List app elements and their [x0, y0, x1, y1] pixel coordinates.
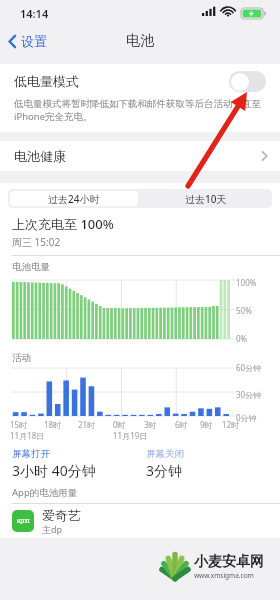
- staticText: 14:14: [20, 6, 49, 21]
- button[interactable]: 低电量模式开关: [229, 71, 266, 92]
- staticText: 设置: [21, 33, 47, 49]
- button[interactable]: iQIYI: [0, 504, 280, 538]
- staticText: iQIYI: [17, 518, 30, 525]
- staticText: 过去10天: [185, 192, 227, 206]
- staticText: 电池: [126, 32, 154, 50]
- staticText: 15时: [10, 419, 28, 430]
- staticText: 爱奇艺: [42, 507, 81, 523]
- button[interactable]: 过去24小时: [10, 191, 138, 206]
- staticText: 3分钟: [146, 461, 183, 480]
- staticText: 0%: [236, 333, 248, 344]
- button[interactable]: 电池健康: [0, 141, 280, 171]
- staticText: 周三 15:02: [12, 235, 61, 249]
- staticText: 21时: [78, 419, 96, 430]
- staticText: 0时: [113, 419, 126, 430]
- staticText: 50%: [236, 305, 252, 316]
- staticText: 30分钟: [236, 389, 262, 400]
- button[interactable]: 过去10天: [140, 189, 272, 208]
- staticText: 3小时 40分钟: [12, 461, 96, 480]
- staticText: 11月18日: [10, 430, 45, 441]
- staticText: 低电量模式将暂时降低如下载和邮件获取等后台活动，直至 iPhone完全充电。: [14, 98, 261, 123]
- button[interactable]: 设置: [0, 29, 55, 53]
- staticText: 屏幕关闭: [146, 448, 184, 460]
- staticText: 屏幕打开: [12, 448, 50, 460]
- staticText: 电池健康: [14, 148, 66, 164]
- staticText: 11月19日: [113, 430, 148, 441]
- staticText: 9时: [200, 419, 213, 430]
- staticText: 6时: [175, 419, 188, 430]
- staticText: 0分钟: [236, 412, 257, 423]
- staticText: 电池电量: [12, 261, 50, 273]
- staticText: www.xmsigma.com: [194, 571, 254, 580]
- staticText: 60分钟: [236, 362, 262, 373]
- staticText: 活动: [12, 352, 31, 364]
- staticText: 过去24小时: [48, 192, 100, 206]
- staticText: 3时: [144, 419, 157, 430]
- staticText: 低电量模式: [14, 73, 79, 89]
- staticText: 小麦安卓网: [194, 553, 264, 571]
- staticText: 上次充电至 100%: [12, 215, 114, 233]
- staticText: 主dp: [42, 523, 63, 535]
- staticText: 18时: [44, 419, 62, 430]
- staticText: App的电池用量: [12, 486, 78, 499]
- staticText: 100%: [236, 277, 257, 288]
- staticText: 12时: [222, 419, 240, 430]
- button[interactable]: 低电量模式: [0, 64, 280, 98]
